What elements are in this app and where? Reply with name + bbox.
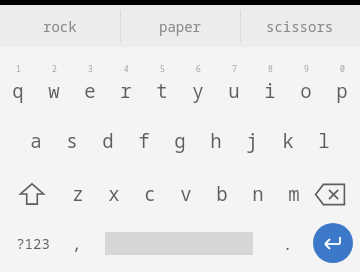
button[interactable]: l (300, 126, 348, 156)
staticText: x (108, 181, 120, 207)
staticText: k (282, 128, 294, 154)
staticText: 0 (340, 63, 345, 74)
staticText: u (228, 78, 240, 104)
button[interactable]: Enter (313, 223, 353, 263)
button[interactable]: y (174, 76, 222, 106)
button[interactable]: 6 (174, 53, 222, 83)
button[interactable]: 4 (102, 53, 150, 83)
button[interactable]: 7 (210, 53, 258, 83)
button[interactable]: v (162, 179, 210, 209)
button[interactable]: u (210, 76, 258, 106)
button[interactable]: w (30, 76, 78, 106)
button[interactable]: z (54, 179, 102, 209)
button[interactable]: . (263, 228, 311, 258)
staticText: 6 (196, 63, 201, 74)
staticText: b (216, 181, 228, 207)
button[interactable]: , (52, 228, 100, 258)
button[interactable]: rock (0, 5, 120, 47)
staticText: p (336, 78, 348, 104)
button[interactable]: m (270, 179, 318, 209)
button[interactable]: q (0, 76, 42, 106)
staticText: scissors (266, 17, 334, 36)
staticText: 2 (52, 63, 57, 74)
staticText: c (144, 181, 156, 207)
staticText: t (156, 78, 168, 104)
staticText: 3 (88, 63, 93, 74)
staticText: 8 (268, 63, 273, 74)
staticText: f (138, 128, 150, 154)
button[interactable]: k (264, 126, 312, 156)
button[interactable]: 2 (30, 53, 78, 83)
staticText: o (300, 78, 312, 104)
button[interactable]: f (120, 126, 168, 156)
staticText: rock (43, 17, 77, 36)
button[interactable]: o (282, 76, 330, 106)
staticText: 5 (160, 63, 165, 74)
staticText: 1 (16, 63, 21, 74)
staticText: r (120, 78, 132, 104)
button[interactable]: e (66, 76, 114, 106)
button[interactable]: scissors (240, 5, 360, 47)
button[interactable]: Backspace (308, 176, 352, 212)
button[interactable]: x (90, 179, 138, 209)
button[interactable]: t (138, 76, 186, 106)
button[interactable]: c (126, 179, 174, 209)
staticText: g (174, 128, 186, 154)
staticText: paper (159, 17, 201, 36)
staticText: l (318, 128, 330, 154)
button[interactable]: n (234, 179, 282, 209)
staticText: i (264, 78, 276, 104)
button[interactable]: 9 (282, 53, 330, 83)
button[interactable]: 1 (0, 53, 42, 83)
button[interactable]: p (318, 76, 360, 106)
button[interactable]: h (192, 126, 240, 156)
staticText: a (30, 128, 42, 154)
staticText: j (246, 128, 258, 154)
staticText: m (288, 181, 300, 207)
staticText: 9 (304, 63, 309, 74)
staticText: w (48, 78, 60, 104)
staticText: ?123 (16, 234, 50, 253)
staticText: n (252, 181, 264, 207)
staticText: d (102, 128, 114, 154)
staticText: v (180, 181, 192, 207)
staticText: q (12, 78, 24, 104)
staticText: . (282, 232, 293, 255)
button[interactable]: g (156, 126, 204, 156)
button[interactable]: i (246, 76, 294, 106)
staticText: s (66, 128, 78, 154)
button[interactable]: s (48, 126, 96, 156)
button[interactable]: 8 (246, 53, 294, 83)
button[interactable]: ?123 (9, 228, 57, 258)
staticText: z (72, 181, 84, 207)
button[interactable]: Shift (10, 176, 54, 212)
button[interactable]: b (198, 179, 246, 209)
button[interactable]: j (228, 126, 276, 156)
button[interactable]: paper (120, 5, 240, 47)
staticText: , (71, 232, 82, 255)
button[interactable]: a (12, 126, 60, 156)
staticText: y (192, 78, 204, 104)
button[interactable]: 3 (66, 53, 114, 83)
button[interactable]: r (102, 76, 150, 106)
staticText: 7 (232, 63, 237, 74)
staticText: h (210, 128, 222, 154)
button[interactable]: 5 (138, 53, 186, 83)
button[interactable]: 0 (318, 53, 360, 83)
button[interactable]: d (84, 126, 132, 156)
staticText: e (84, 78, 96, 104)
staticText: 4 (124, 63, 129, 74)
